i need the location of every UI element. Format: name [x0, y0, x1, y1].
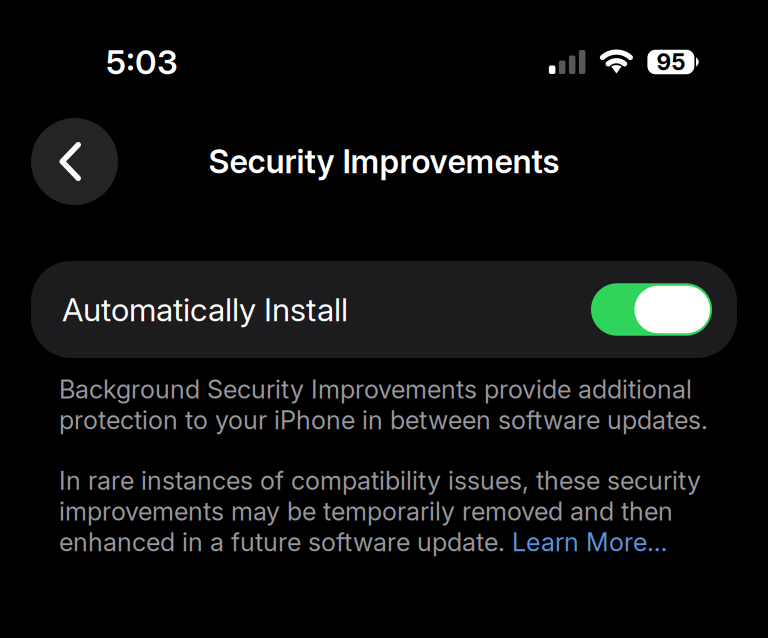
button[interactable]: Automatically Install	[31, 261, 737, 358]
staticText: 95	[656, 48, 685, 76]
staticText: In rare instances of compatibility issue…	[59, 465, 701, 557]
button[interactable]: Back	[31, 118, 118, 205]
staticText: Security Improvements	[208, 142, 559, 181]
button[interactable]: Automatically Install	[591, 283, 712, 336]
staticText: Background Security Improvements provide…	[59, 374, 708, 435]
staticText: Automatically Install	[62, 290, 348, 329]
staticText: 5:03	[106, 42, 178, 82]
